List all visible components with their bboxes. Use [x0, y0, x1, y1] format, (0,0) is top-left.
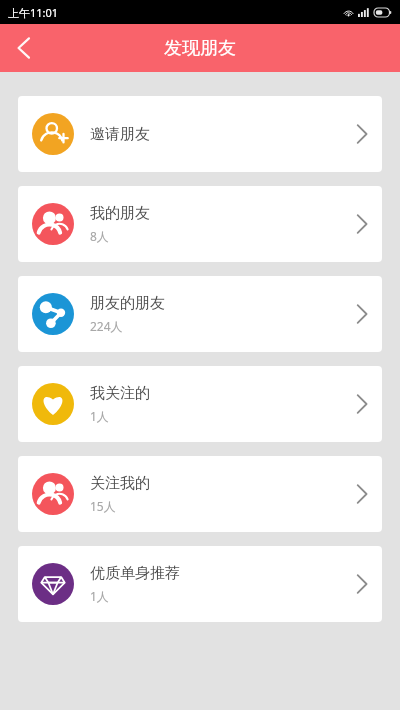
staticText: 1人	[90, 588, 109, 604]
button[interactable]: 我关注的	[18, 366, 382, 442]
button[interactable]: 邀请朋友	[18, 96, 382, 172]
button[interactable]: 朋友的朋友	[18, 276, 382, 352]
button[interactable]: 关注我的	[18, 456, 382, 532]
staticText: 我的朋友	[90, 204, 150, 223]
staticText: 224人	[90, 318, 123, 334]
button[interactable]: Back	[0, 24, 46, 72]
button[interactable]: 优质单身推荐	[18, 546, 382, 622]
staticText: 优质单身推荐	[90, 564, 180, 583]
staticText: 我关注的	[90, 384, 150, 403]
staticText: 8人	[90, 228, 109, 244]
staticText: 关注我的	[90, 474, 150, 493]
staticText: 上午11:01	[8, 5, 59, 20]
staticText: 15人	[90, 498, 116, 514]
staticText: 发现朋友	[164, 37, 236, 60]
button[interactable]: 我的朋友	[18, 186, 382, 262]
staticText: 1人	[90, 408, 109, 424]
staticText: 邀请朋友	[90, 125, 150, 144]
staticText: 朋友的朋友	[90, 294, 165, 313]
